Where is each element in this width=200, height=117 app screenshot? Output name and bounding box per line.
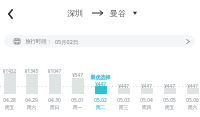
- button[interactable]: ¥447: [181, 0, 200, 117]
- staticText: ¥1047: [43, 68, 66, 74]
- button[interactable]: ¥1432: [0, 0, 21, 117]
- staticText: 05.05: [158, 97, 181, 104]
- staticText: 曼谷: [110, 8, 126, 18]
- button[interactable]: 深圳: [67, 7, 137, 18]
- button[interactable]: ¥547: [66, 0, 89, 117]
- staticText: 周日: [43, 104, 66, 110]
- button[interactable]: ¥447: [112, 0, 135, 117]
- staticText: 周三: [112, 104, 135, 110]
- staticText: 04.30: [43, 97, 66, 104]
- staticText: 05.03: [112, 97, 135, 104]
- button[interactable]: ¥447: [135, 0, 158, 117]
- button[interactable]: 最优选择: [89, 0, 112, 117]
- staticText: 最优选择: [89, 74, 112, 80]
- staticText: ¥447: [89, 81, 112, 87]
- staticText: 旅行时段：: [25, 38, 52, 45]
- button[interactable]: ¥447: [158, 0, 181, 117]
- staticText: 05.06: [181, 97, 200, 104]
- staticText: ¥447: [135, 83, 158, 89]
- button[interactable]: ¥1047: [43, 0, 66, 117]
- staticText: 周六: [20, 104, 43, 110]
- staticText: 04.29: [20, 97, 43, 104]
- button[interactable]: ¥1345: [20, 0, 43, 117]
- staticText: ¥1432: [0, 68, 21, 74]
- staticText: 05.01: [66, 97, 89, 104]
- staticText: ¥447: [181, 83, 200, 89]
- staticText: 05月02日: [55, 38, 79, 45]
- staticText: 04.28: [0, 97, 21, 104]
- staticText: 周五: [0, 104, 21, 110]
- button[interactable]: Back: [2, 5, 19, 22]
- staticText: 周六: [181, 104, 200, 110]
- staticText: ¥447: [112, 83, 135, 89]
- button[interactable]: 旅行时段：: [4, 35, 195, 47]
- staticText: 周二: [89, 104, 112, 110]
- staticText: 周四: [135, 104, 158, 110]
- staticText: 周一: [66, 104, 89, 110]
- staticText: ¥447: [158, 83, 181, 89]
- staticText: 05.04: [135, 97, 158, 104]
- staticText: 05.02: [89, 97, 112, 104]
- staticText: ¥547: [66, 72, 89, 78]
- staticText: 周五: [158, 104, 181, 110]
- staticText: 深圳: [67, 8, 83, 18]
- staticText: ¥1345: [20, 68, 43, 74]
